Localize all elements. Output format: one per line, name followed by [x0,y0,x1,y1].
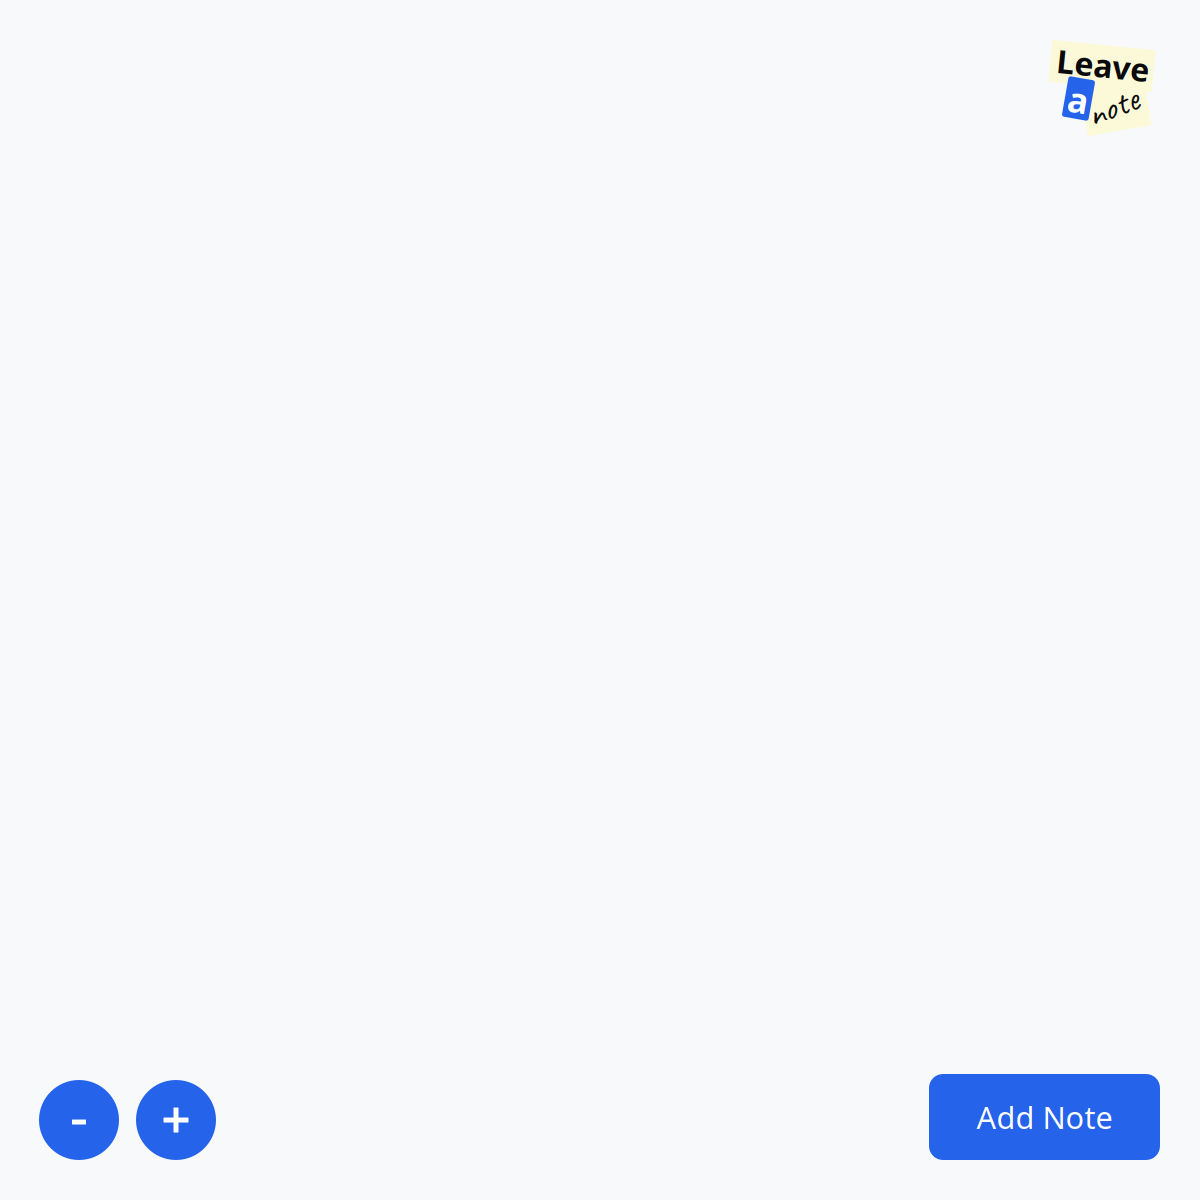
button[interactable]: Decrease [39,1080,119,1160]
staticText: a [1068,76,1089,122]
staticText: note [1086,83,1139,129]
button[interactable]: Add Note [929,1074,1160,1160]
button[interactable]: Increase [136,1080,216,1160]
staticText: Leave [1056,44,1149,86]
staticText: Add Note [976,1097,1112,1137]
